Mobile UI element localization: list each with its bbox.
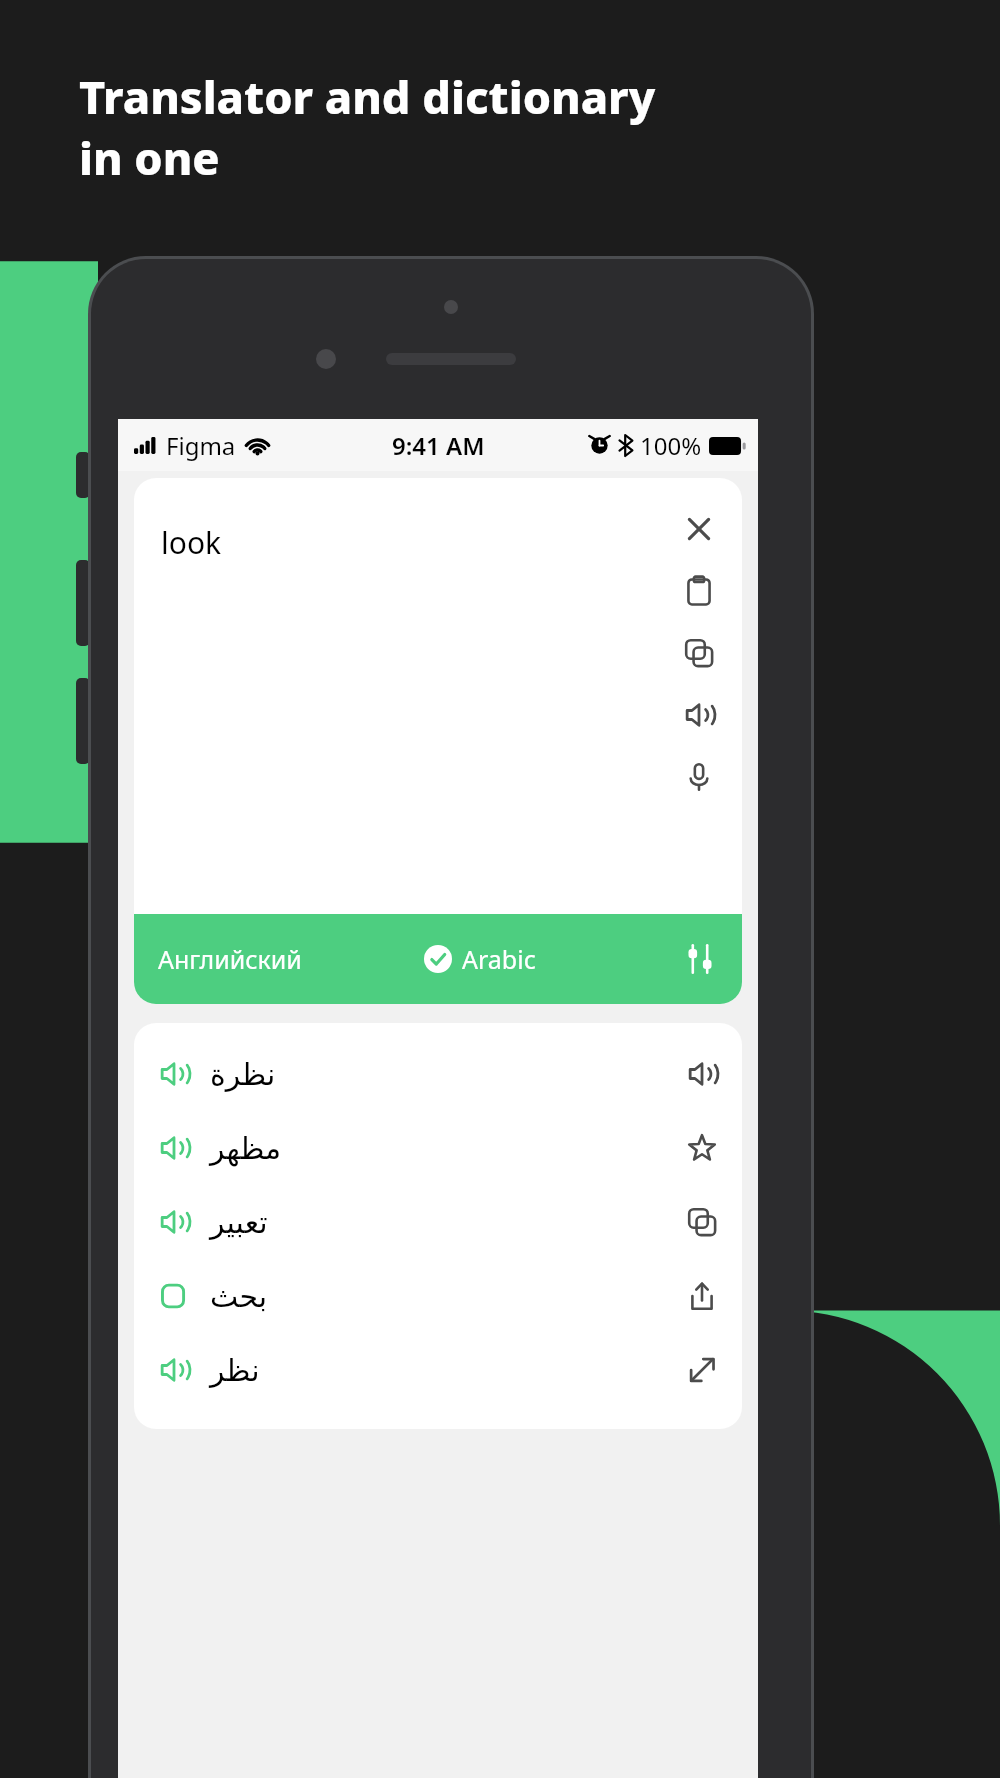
button[interactable]: نظرة <box>134 1037 742 1111</box>
button[interactable]: Swap languages <box>682 941 718 977</box>
button[interactable]: تعبير <box>134 1185 742 1259</box>
staticText: Arabic <box>462 942 536 976</box>
button[interactable]: Listen <box>678 694 720 736</box>
button[interactable]: Voice input <box>678 756 720 798</box>
staticText: 100% <box>640 429 702 462</box>
button[interactable]: Английский <box>134 914 742 1004</box>
button[interactable]: Paste <box>678 570 720 612</box>
button[interactable]: Copy <box>678 632 720 674</box>
staticText: in one <box>79 127 220 188</box>
staticText: Translator and dictionary <box>79 66 656 127</box>
button[interactable]: مظهر <box>134 1111 742 1185</box>
staticText: look <box>161 522 222 563</box>
staticText: Figma <box>166 429 236 462</box>
staticText: تعبير <box>210 1205 686 1240</box>
button[interactable]: Clear <box>678 508 720 550</box>
staticText: نظر <box>210 1353 686 1388</box>
button[interactable]: بحث <box>134 1259 742 1333</box>
staticText: مظهر <box>210 1131 686 1166</box>
staticText: 9:41 AM <box>392 429 485 462</box>
staticText: نظرة <box>210 1057 686 1092</box>
staticText: Английский <box>158 942 424 976</box>
staticText: بحث <box>210 1279 686 1314</box>
button[interactable]: نظر <box>134 1333 742 1407</box>
